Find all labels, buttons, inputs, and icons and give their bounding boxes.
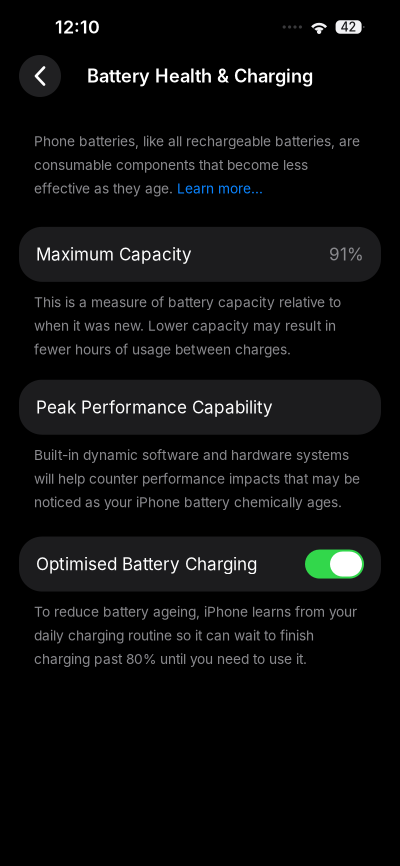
staticText: Battery Health & Charging — [87, 65, 313, 87]
button[interactable]: Optimised Battery Charging — [0, 537, 400, 592]
staticText: Built-in dynamic software and hardware s… — [34, 447, 360, 511]
staticText: This is a measure of battery capacity re… — [34, 294, 341, 358]
staticText: Optimised Battery Charging — [36, 554, 257, 574]
button[interactable]: Peak Performance Capability — [0, 380, 400, 435]
button[interactable]: Maximum Capacity — [0, 227, 400, 282]
staticText: 12:10 — [55, 16, 100, 38]
button[interactable]: Back — [19, 55, 61, 97]
staticText: 42 — [341, 19, 357, 35]
staticText: To reduce battery ageing, iPhone learns … — [34, 604, 357, 667]
staticText: Peak Performance Capability — [36, 397, 273, 417]
staticText: Phone batteries, like all rechargeable b… — [34, 133, 360, 197]
staticText: 91% — [329, 244, 364, 265]
staticText: Maximum Capacity — [36, 244, 192, 265]
button[interactable]: Optimised Battery Charging, on — [305, 550, 364, 579]
